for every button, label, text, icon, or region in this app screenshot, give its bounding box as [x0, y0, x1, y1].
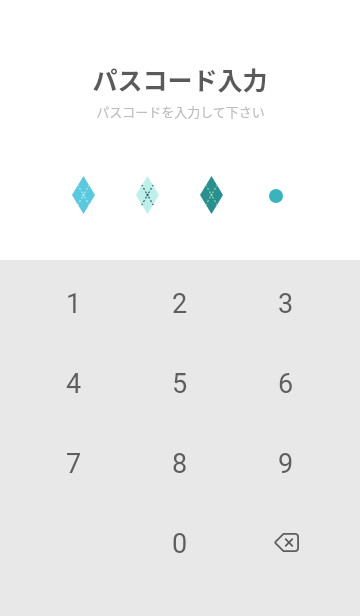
button[interactable]: 4	[21, 344, 127, 424]
staticText: パスコード入力	[92, 61, 268, 97]
button[interactable]: 9	[233, 424, 339, 504]
button[interactable]: Backspace	[233, 504, 339, 584]
staticText: 5	[172, 368, 188, 400]
button[interactable]: 3	[233, 264, 339, 344]
button[interactable]: 2	[127, 264, 233, 344]
staticText: パスコードを入力して下さい	[96, 102, 265, 121]
staticText: 4	[66, 368, 82, 400]
staticText: 8	[172, 448, 188, 480]
staticText: 9	[278, 448, 294, 480]
button[interactable]: 5	[127, 344, 233, 424]
staticText: 0	[172, 528, 188, 560]
staticText: 6	[278, 368, 294, 400]
staticText: 2	[172, 288, 188, 320]
staticText: 1	[66, 288, 82, 320]
button[interactable]: 1	[21, 264, 127, 344]
staticText: 3	[278, 288, 294, 320]
other: Backspace	[274, 533, 299, 552]
button[interactable]: 0	[127, 504, 233, 584]
button[interactable]: 7	[21, 424, 127, 504]
button[interactable]: 8	[127, 424, 233, 504]
staticText: 7	[66, 448, 82, 480]
button[interactable]: 6	[233, 344, 339, 424]
